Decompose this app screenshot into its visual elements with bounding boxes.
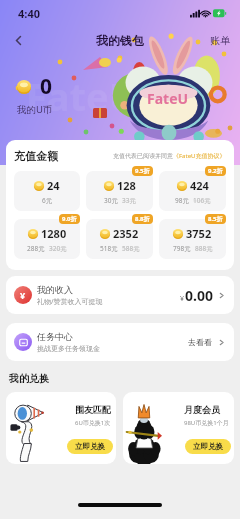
staticText: 288元 [27, 244, 45, 253]
staticText: 8.8折 [135, 215, 150, 223]
staticText: 去看看 [188, 337, 212, 347]
staticText: ¥ [20, 289, 26, 301]
staticText: 33元 [122, 196, 136, 205]
staticText: 98元 [175, 196, 189, 205]
staticText: 礼物/赞赏收入可提现 [37, 297, 103, 307]
staticText: 我的钱包 [96, 33, 144, 48]
staticText: 2352 [113, 226, 139, 241]
staticText: 账单 [210, 34, 230, 47]
button[interactable]: 24 [14, 171, 80, 211]
staticText: FateU [147, 89, 189, 108]
staticText: 0.00 [185, 286, 213, 305]
staticText: 3752 [186, 226, 212, 241]
button[interactable]: 月度会员 [123, 392, 234, 464]
staticText: 我的收入 [37, 284, 73, 295]
staticText: 588元 [122, 244, 140, 253]
staticText: 8.5折 [208, 215, 223, 223]
staticText: 98U币兑换1个月 [184, 419, 229, 427]
button[interactable]: Back [8, 30, 28, 50]
button[interactable]: 2352 [86, 219, 153, 259]
button[interactable]: 128 [86, 171, 153, 211]
staticText: 4:40 [18, 6, 40, 21]
button[interactable]: 3752 [159, 219, 226, 259]
button[interactable]: 424 [159, 171, 226, 211]
staticText: 30元 [104, 196, 118, 205]
staticText: 立即兑换 [75, 442, 105, 451]
staticText: 充值金额 [14, 149, 58, 163]
staticText: 518元 [100, 244, 118, 253]
button[interactable]: 《FateU充值协议》 [173, 152, 226, 160]
button[interactable]: 立即兑换 [185, 439, 231, 454]
button[interactable]: 1280 [14, 219, 80, 259]
button[interactable]: 账单 [200, 30, 240, 51]
button[interactable]: ¥ [6, 276, 234, 314]
staticText: 挑战更多任务领现金 [37, 344, 100, 353]
staticText: ¥ [180, 294, 185, 304]
staticText: 128 [117, 178, 136, 193]
button[interactable]: 立即兑换 [67, 439, 113, 454]
staticText: 0 [40, 72, 53, 101]
staticText: 9.2折 [208, 167, 223, 175]
staticText: 月度会员 [184, 404, 220, 415]
staticText: 任务中心 [37, 331, 73, 342]
staticText: 424 [190, 178, 209, 193]
staticText: 106元 [193, 196, 211, 205]
staticText: 1280 [41, 226, 67, 241]
button[interactable]: 围友匹配 [6, 392, 116, 464]
staticText: 6U币兑换1次 [75, 419, 111, 427]
staticText: 围友匹配 [75, 404, 111, 415]
staticText: 888元 [195, 244, 213, 253]
staticText: 24 [47, 178, 60, 193]
staticText: 立即兑换 [193, 442, 223, 451]
button[interactable]: 任务中心 [6, 323, 234, 361]
staticText: 我的兑换 [9, 372, 49, 385]
staticText: 充值代表已阅读并同意 [113, 152, 173, 160]
staticText: 320元 [49, 244, 67, 253]
staticText: 9.5折 [135, 167, 150, 175]
staticText: 9.0折 [62, 215, 77, 223]
staticText: FateU [26, 70, 138, 122]
staticText: 我的U币 [17, 103, 53, 116]
staticText: 6元 [42, 196, 53, 205]
staticText: 798元 [173, 244, 191, 253]
